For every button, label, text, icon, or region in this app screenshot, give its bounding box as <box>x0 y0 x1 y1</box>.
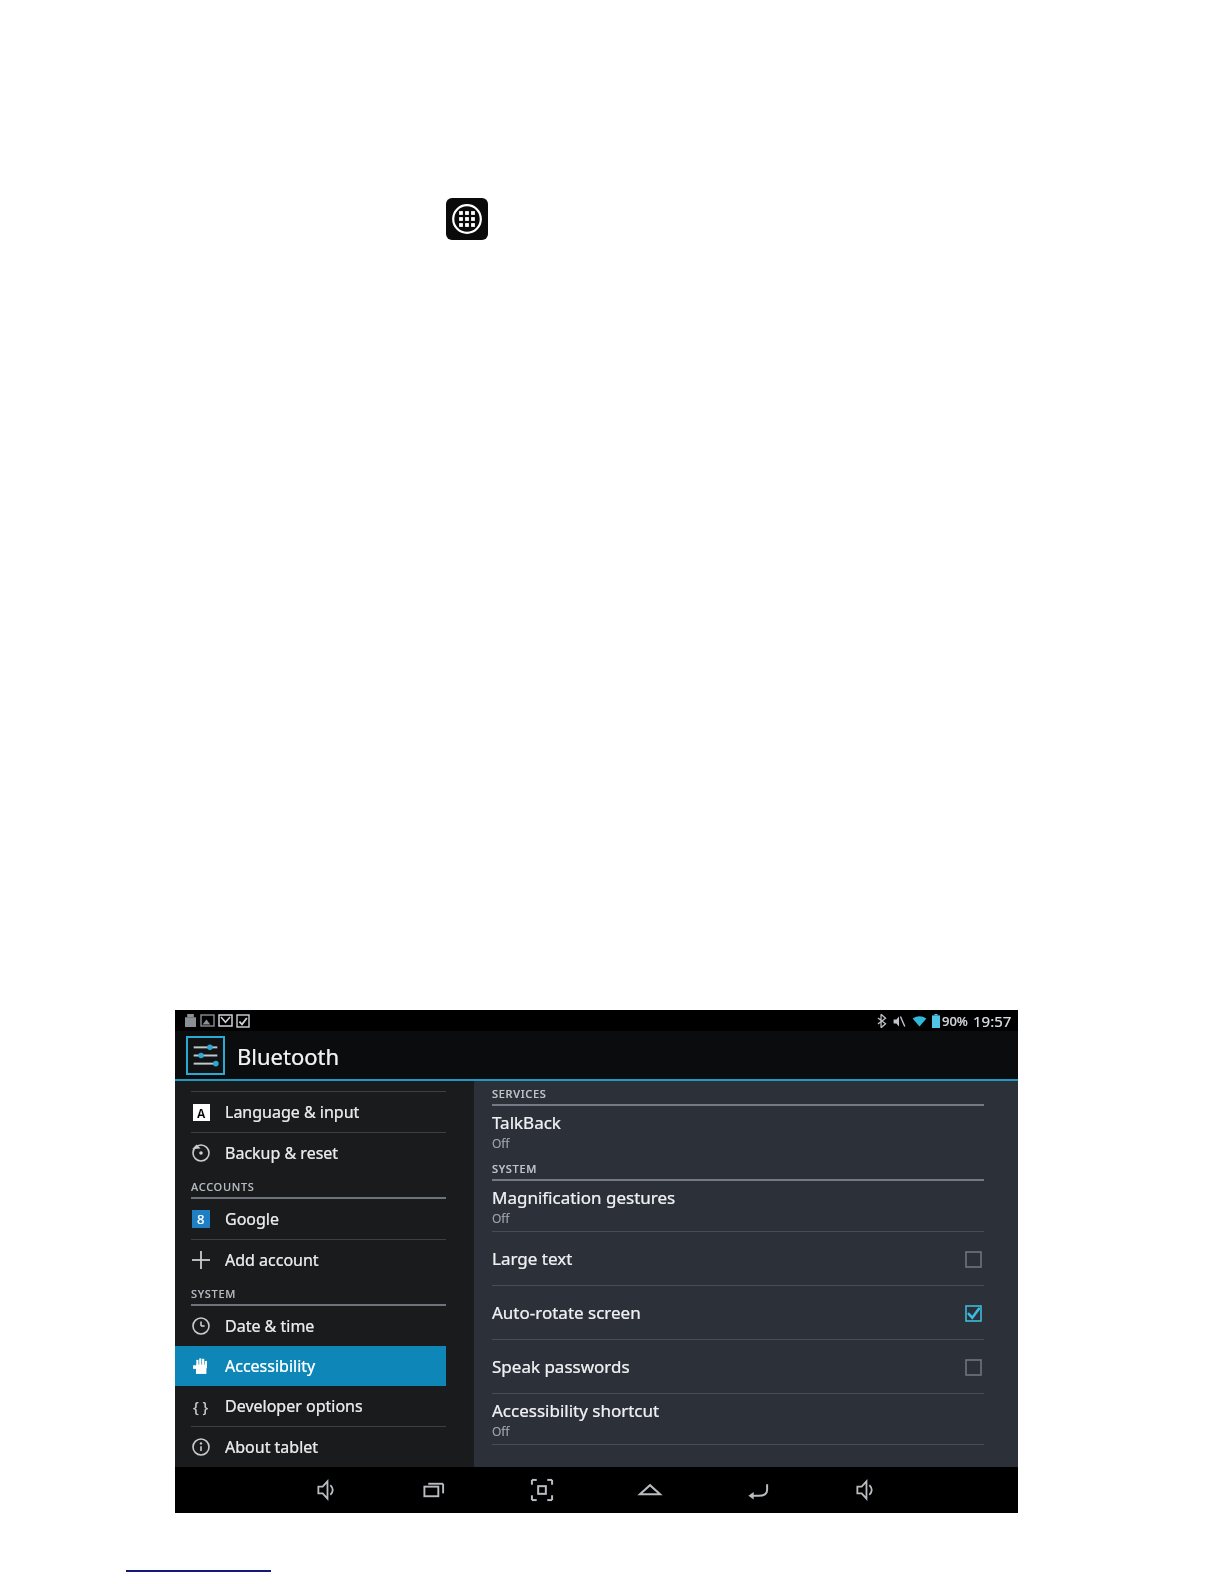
staticText: Off <box>492 1135 510 1151</box>
staticText: Speak passwords <box>492 1355 630 1378</box>
staticText: Off <box>492 1210 510 1226</box>
staticText: Google <box>225 1208 280 1230</box>
button[interactable]: Add account <box>175 1240 474 1280</box>
staticText: About tablet <box>225 1436 319 1458</box>
button[interactable]: Volume down <box>301 1467 353 1513</box>
button[interactable]: Back <box>732 1467 784 1513</box>
button[interactable]: Date & time <box>175 1306 474 1346</box>
staticText: 90% <box>942 1012 968 1030</box>
button[interactable]: Auto-rotate screen <box>492 1286 984 1339</box>
staticText: 8 <box>197 1210 205 1228</box>
button[interactable]: Apps <box>446 198 488 240</box>
staticText: Auto-rotate screen <box>492 1301 641 1324</box>
button[interactable]: A <box>175 1092 474 1132</box>
button[interactable]: Checked <box>962 1302 984 1324</box>
staticText: Date & time <box>225 1315 315 1337</box>
button[interactable]: Backup & reset <box>175 1133 474 1173</box>
staticText: Off <box>492 1423 510 1439</box>
button[interactable]: Magnification gestures <box>492 1181 984 1231</box>
button[interactable]: Large text <box>492 1232 984 1285</box>
staticText: Developer options <box>225 1395 363 1417</box>
staticText: Magnification gestures <box>492 1186 676 1209</box>
staticText: Add account <box>225 1249 319 1271</box>
button[interactable]: Unchecked <box>962 1248 984 1270</box>
button[interactable]: { } <box>175 1386 474 1426</box>
button[interactable]: Speak passwords <box>492 1340 984 1393</box>
button[interactable]: Recent apps <box>408 1467 460 1513</box>
button[interactable]: 8 <box>175 1199 474 1239</box>
staticText: ACCOUNTS <box>191 1179 255 1194</box>
button[interactable]: Screenshot <box>516 1467 568 1513</box>
button[interactable]: Unchecked <box>962 1356 984 1378</box>
staticText: A <box>197 1105 206 1121</box>
button[interactable]: About tablet <box>175 1427 474 1467</box>
button[interactable]: Bluetooth <box>187 1037 340 1074</box>
staticText: Backup & reset <box>225 1142 339 1164</box>
staticText: SERVICES <box>492 1086 547 1101</box>
staticText: { } <box>193 1396 209 1416</box>
staticText: Accessibility <box>225 1355 316 1377</box>
staticText: Language & input <box>225 1101 360 1123</box>
staticText: 19:57 <box>973 1011 1012 1031</box>
button[interactable]: Accessibility shortcut <box>492 1394 984 1444</box>
staticText: Bluetooth <box>237 1041 340 1071</box>
staticText: SYSTEM <box>492 1161 538 1176</box>
staticText: Large text <box>492 1247 573 1270</box>
button[interactable]: Home <box>624 1467 676 1513</box>
button[interactable]: Volume up <box>840 1467 892 1513</box>
staticText: TalkBack <box>492 1111 561 1134</box>
staticText: SYSTEM <box>191 1286 237 1301</box>
button[interactable]: TalkBack <box>492 1106 984 1156</box>
button[interactable]: Accessibility <box>175 1346 446 1386</box>
staticText: Accessibility shortcut <box>492 1399 660 1422</box>
